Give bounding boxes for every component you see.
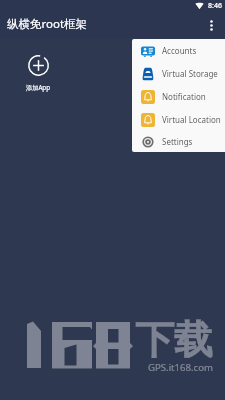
staticText: Notification (162, 91, 206, 102)
button[interactable]: Accounts (132, 39, 225, 62)
staticText: 8:46 (208, 1, 222, 11)
staticText: 下载 (135, 315, 213, 364)
staticText: Virtual Storage (162, 68, 218, 79)
button[interactable]: Settings (132, 131, 225, 152)
staticText: Virtual Location (162, 114, 221, 125)
button[interactable]: Virtual Storage (132, 62, 225, 85)
staticText: 添加App (26, 83, 50, 91)
staticText: 纵横免root框架 (7, 16, 88, 32)
button[interactable]: More options (199, 13, 223, 37)
staticText: Accounts (162, 45, 197, 56)
button[interactable]: Virtual Location (132, 108, 225, 131)
staticText: GPS.it168.com (148, 361, 213, 374)
button[interactable]: 添加App (13, 55, 63, 91)
button[interactable]: Notification (132, 85, 225, 108)
staticText: Settings (162, 136, 193, 147)
